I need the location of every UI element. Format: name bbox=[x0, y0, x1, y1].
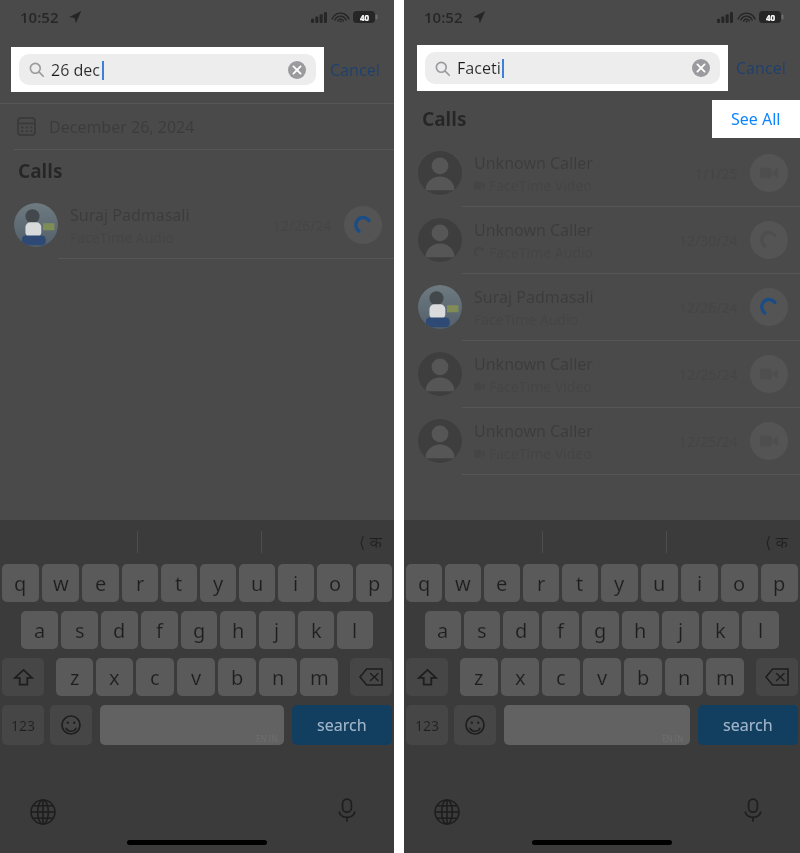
button[interactable]: Delete bbox=[756, 658, 798, 696]
button[interactable]: w bbox=[445, 564, 481, 602]
button[interactable]: Emoji bbox=[454, 705, 496, 745]
button[interactable]: Unknown Caller bbox=[404, 341, 800, 407]
button[interactable]: 123 bbox=[2, 705, 44, 745]
button[interactable]: g bbox=[582, 611, 619, 649]
button[interactable]: Cancel bbox=[330, 59, 380, 81]
button[interactable]: i bbox=[278, 564, 314, 602]
button[interactable]: Call bbox=[344, 206, 382, 244]
button[interactable]: Unknown Caller bbox=[404, 140, 800, 206]
button[interactable]: b bbox=[218, 658, 256, 696]
button[interactable]: h bbox=[622, 611, 659, 649]
button[interactable]: d bbox=[503, 611, 539, 649]
button[interactable]: e bbox=[82, 564, 119, 602]
button[interactable]: g bbox=[181, 611, 217, 649]
button[interactable]: k bbox=[702, 611, 739, 649]
staticText: Faceti bbox=[457, 57, 501, 79]
button[interactable]: Call bbox=[750, 288, 788, 326]
button[interactable]: u bbox=[239, 564, 275, 602]
button[interactable]: v bbox=[583, 658, 621, 696]
button[interactable]: Call bbox=[750, 221, 788, 259]
button[interactable]: t bbox=[562, 564, 598, 602]
button[interactable]: t bbox=[161, 564, 197, 602]
button[interactable]: z bbox=[460, 658, 498, 696]
button[interactable]: See All bbox=[712, 100, 800, 138]
staticText: s bbox=[477, 617, 487, 644]
button[interactable]: y bbox=[200, 564, 236, 602]
staticText: c bbox=[556, 664, 566, 691]
button[interactable]: Shift bbox=[2, 658, 44, 696]
button[interactable]: FaceTime video call bbox=[750, 422, 788, 460]
button[interactable]: Change keyboard bbox=[434, 799, 460, 825]
button[interactable]: f bbox=[542, 611, 579, 649]
button[interactable]: v bbox=[177, 658, 215, 696]
button[interactable]: m bbox=[706, 658, 744, 696]
button[interactable]: Unknown Caller bbox=[404, 207, 800, 273]
button[interactable]: p bbox=[761, 564, 798, 602]
button[interactable]: 123 bbox=[406, 705, 448, 745]
button[interactable]: q bbox=[406, 564, 442, 602]
staticText: f bbox=[156, 617, 163, 644]
button[interactable]: ⟨ क bbox=[765, 531, 788, 553]
button[interactable]: Suraj Padmasali bbox=[0, 192, 394, 258]
button[interactable]: Dictation bbox=[740, 797, 766, 823]
button[interactable]: s bbox=[464, 611, 500, 649]
button[interactable]: Dictation bbox=[334, 797, 360, 823]
button[interactable]: m bbox=[300, 658, 338, 696]
staticText: Suraj Padmasali bbox=[474, 286, 594, 308]
button[interactable]: y bbox=[601, 564, 638, 602]
button[interactable]: r bbox=[122, 564, 158, 602]
staticText: n bbox=[678, 664, 691, 691]
button[interactable]: ⟨ क bbox=[359, 531, 382, 553]
button[interactable]: d bbox=[101, 611, 138, 649]
button[interactable]: Shift bbox=[406, 658, 448, 696]
staticText: 10:52 bbox=[20, 7, 59, 27]
button[interactable]: i bbox=[681, 564, 718, 602]
button[interactable]: Clear text bbox=[288, 61, 306, 79]
button[interactable]: q bbox=[2, 564, 39, 602]
button[interactable]: w bbox=[42, 564, 79, 602]
button[interactable]: search bbox=[698, 705, 798, 745]
button[interactable]: k bbox=[298, 611, 334, 649]
button[interactable]: z bbox=[56, 658, 93, 696]
button[interactable]: b bbox=[624, 658, 662, 696]
button[interactable]: c bbox=[542, 658, 580, 696]
button[interactable]: x bbox=[501, 658, 539, 696]
button[interactable]: o bbox=[721, 564, 758, 602]
button[interactable]: a bbox=[425, 611, 461, 649]
button[interactable]: p bbox=[356, 564, 392, 602]
button[interactable]: e bbox=[484, 564, 520, 602]
button[interactable]: FaceTime video call bbox=[750, 355, 788, 393]
button[interactable]: r bbox=[523, 564, 559, 602]
button[interactable]: Cancel bbox=[736, 57, 786, 79]
staticText: p bbox=[773, 570, 786, 597]
button[interactable]: Unknown Caller bbox=[404, 408, 800, 474]
button[interactable]: h bbox=[220, 611, 256, 649]
button[interactable]: c bbox=[136, 658, 174, 696]
button[interactable]: Emoji bbox=[50, 705, 92, 745]
button[interactable]: search bbox=[292, 705, 392, 745]
button[interactable]: 26 dec bbox=[19, 54, 316, 85]
button[interactable]: l bbox=[337, 611, 373, 649]
button[interactable]: u bbox=[641, 564, 678, 602]
button[interactable]: Delete bbox=[350, 658, 392, 696]
button[interactable]: s bbox=[61, 611, 98, 649]
button[interactable]: j bbox=[662, 611, 699, 649]
button[interactable]: Change keyboard bbox=[30, 799, 56, 825]
button[interactable]: l bbox=[742, 611, 779, 649]
button[interactable]: n bbox=[259, 658, 297, 696]
button[interactable]: Faceti bbox=[425, 52, 720, 84]
button[interactable]: x bbox=[96, 658, 133, 696]
button[interactable]: o bbox=[317, 564, 353, 602]
button[interactable]: j bbox=[259, 611, 295, 649]
button[interactable]: f bbox=[141, 611, 178, 649]
button[interactable]: a bbox=[21, 611, 58, 649]
button[interactable]: Clear text bbox=[692, 59, 710, 77]
button[interactable]: Suraj Padmasali bbox=[404, 274, 800, 340]
button[interactable]: n bbox=[665, 658, 703, 696]
button[interactable]: FaceTime video call bbox=[750, 154, 788, 192]
